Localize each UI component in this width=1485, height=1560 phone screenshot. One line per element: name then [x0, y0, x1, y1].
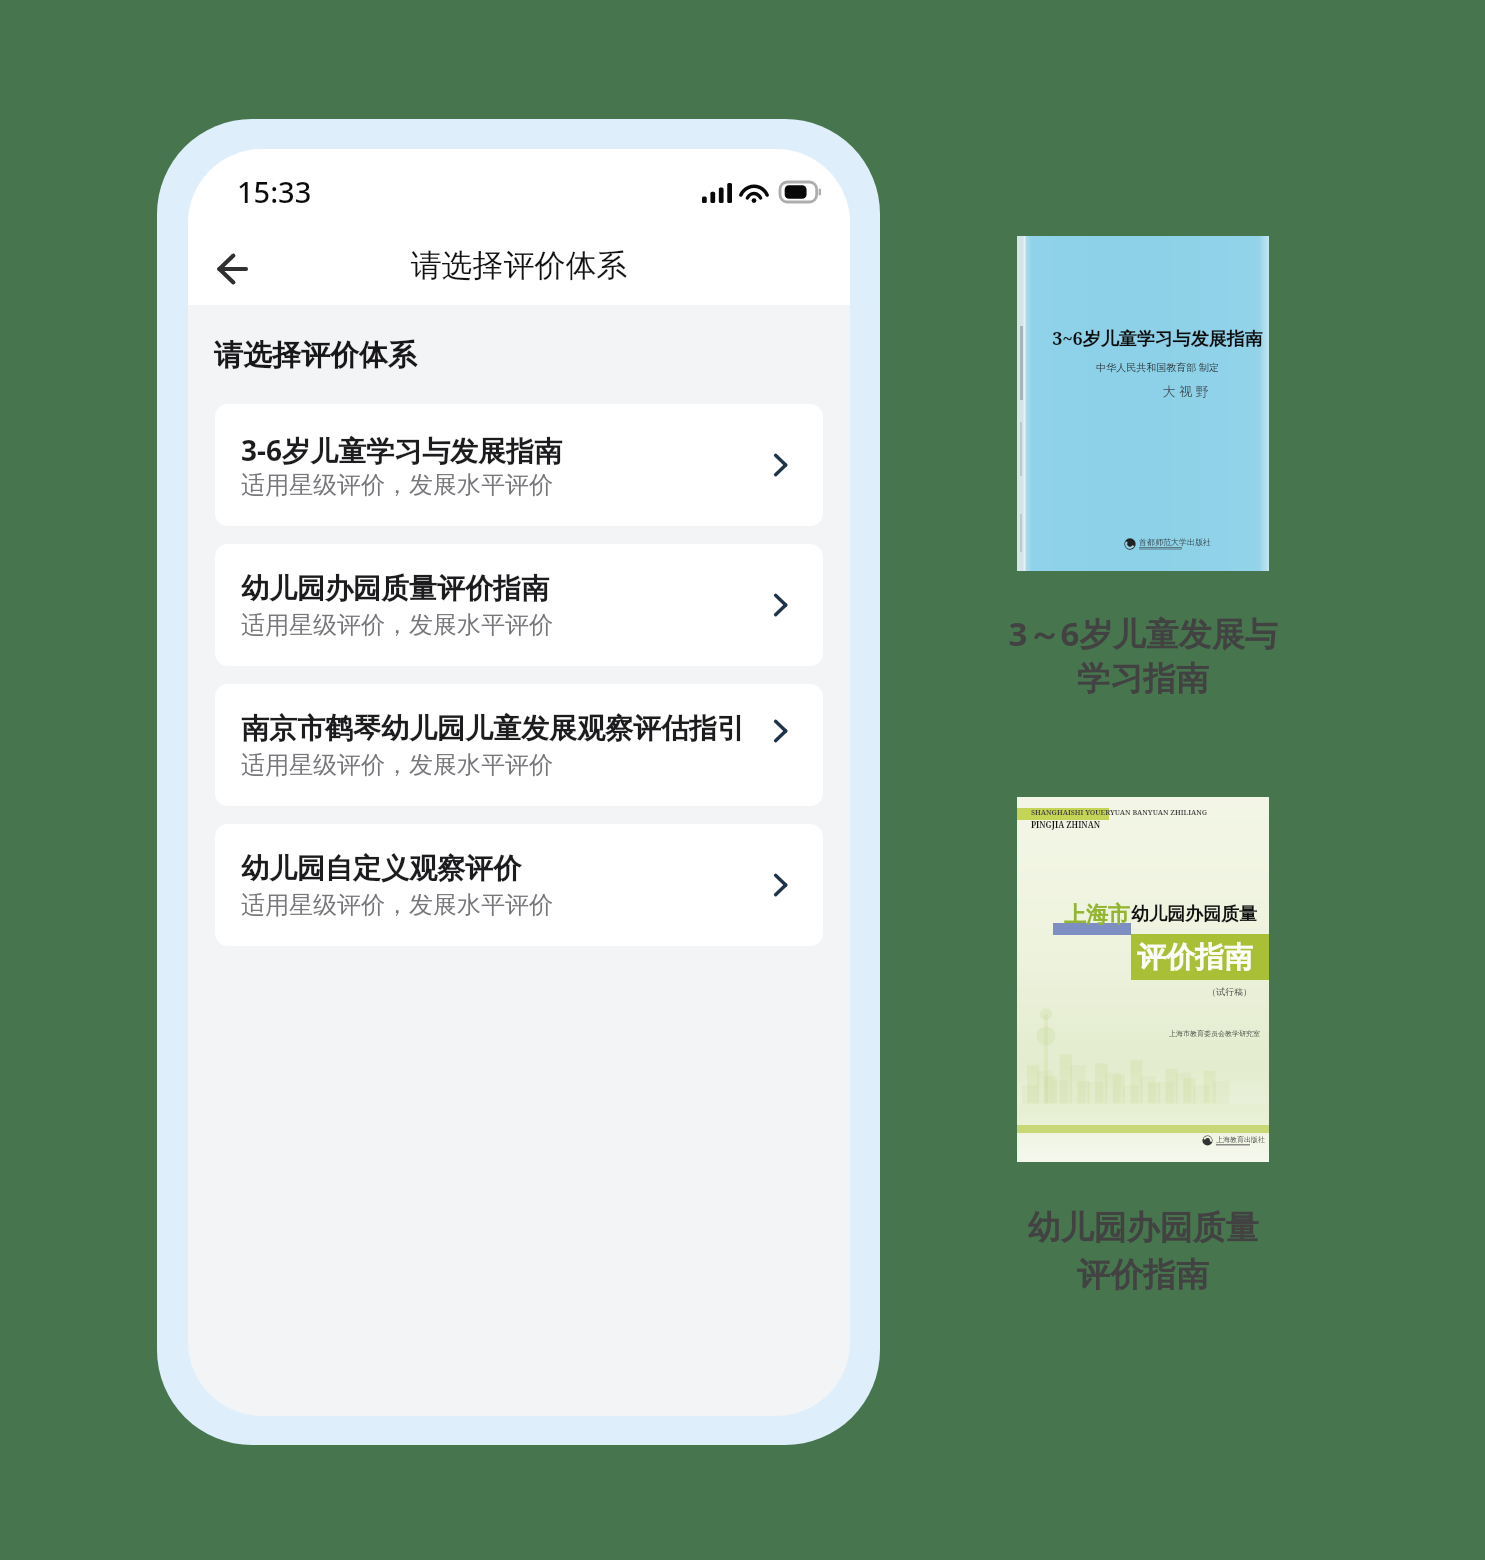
staticText: 适用星级评价，发展水平评价 [241, 750, 553, 780]
staticText: 评价指南 [1137, 939, 1253, 976]
staticText: 15:33 [237, 172, 312, 211]
staticText: 学习指南 [983, 658, 1303, 700]
staticText: 大 视 野 [1074, 382, 1297, 400]
staticText: 上海市教育委员会教学研究室 [1169, 1029, 1260, 1038]
staticText: 幼儿园办园质量评价指南 [241, 571, 549, 606]
button[interactable]: Back [204, 241, 260, 297]
staticText: 上海市 [1064, 901, 1130, 929]
staticText: 请选择评价体系 [214, 337, 417, 374]
staticText: SHANGHAISHI YOUERYUAN BANYUAN ZHILIANG [1031, 808, 1208, 818]
staticText: 3～6岁儿童发展与 [983, 611, 1303, 656]
button[interactable]: 幼儿园自定义观察评价 [215, 824, 823, 946]
staticText: 3~6岁儿童学习与发展指南 [1046, 326, 1269, 351]
staticText: 适用星级评价，发展水平评价 [241, 890, 553, 920]
staticText: 南京市鹤琴幼儿园儿童发展观察评估指引 [241, 711, 745, 746]
staticText: （试行稿） [1207, 986, 1252, 997]
staticText: 中华人民共和国教育部 制定 [1046, 360, 1269, 374]
staticText: 幼儿园自定义观察评价 [241, 851, 521, 886]
staticText: 幼儿园办园质量 [983, 1207, 1303, 1249]
staticText: 幼儿园办园质量 [1131, 903, 1257, 926]
staticText: 适用星级评价，发展水平评价 [241, 470, 553, 500]
staticText: 3-6岁儿童学习与发展指南 [241, 431, 562, 469]
button[interactable]: 南京市鹤琴幼儿园儿童发展观察评估指引 [215, 684, 823, 806]
staticText: 首都师范大学出版社 [1139, 537, 1211, 547]
staticText: 请选择评价体系 [188, 246, 850, 285]
button[interactable]: 幼儿园办园质量评价指南 [215, 544, 823, 666]
staticText: 评价指南 [983, 1254, 1303, 1296]
staticText: PINGJIA ZHINAN [1031, 819, 1100, 830]
staticText: 适用星级评价，发展水平评价 [241, 610, 553, 640]
staticText: 上海教育出版社 [1216, 1135, 1265, 1144]
button[interactable]: 3-6岁儿童学习与发展指南 [215, 404, 823, 526]
